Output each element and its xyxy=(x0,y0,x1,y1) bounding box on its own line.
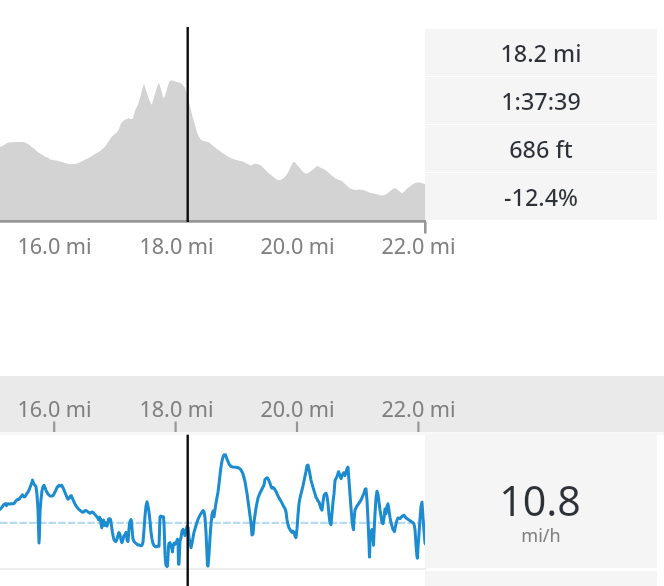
button[interactable]: 1:37:39 xyxy=(425,77,657,124)
staticText: mi/h xyxy=(521,523,561,548)
staticText: 18.0 mi xyxy=(139,394,214,423)
staticText: 20.0 mi xyxy=(260,231,335,260)
button[interactable]: -12.4% xyxy=(425,173,657,220)
staticText: 18.2 mi xyxy=(500,37,582,69)
button[interactable]: 10.8 xyxy=(425,434,657,568)
staticText: 16.0 mi xyxy=(17,394,92,423)
staticText: 16.0 mi xyxy=(17,231,92,260)
button[interactable]: 686 ft xyxy=(425,125,657,172)
staticText: 22.0 mi xyxy=(381,231,456,260)
staticText: 686 ft xyxy=(509,133,573,165)
staticText: 18.0 mi xyxy=(139,231,214,260)
button[interactable]: 18.2 mi xyxy=(425,29,657,76)
staticText: 20.0 mi xyxy=(260,394,335,423)
staticText: 1:37:39 xyxy=(501,85,581,117)
staticText: 10.8 xyxy=(499,472,581,528)
staticText: -12.4% xyxy=(504,181,578,213)
staticText: 22.0 mi xyxy=(381,394,456,423)
